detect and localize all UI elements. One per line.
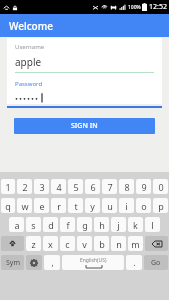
- staticText: ,: [51, 257, 54, 268]
- staticText: r: [57, 200, 61, 212]
- staticText: q: [5, 200, 11, 212]
- button[interactable]: p: [153, 198, 168, 213]
- button[interactable]: Settings: [26, 255, 42, 270]
- staticText: z: [31, 238, 36, 250]
- staticText: m: [131, 238, 140, 250]
- staticText: o: [141, 200, 147, 212]
- staticText: Password: [15, 80, 43, 88]
- button[interactable]: d: [43, 217, 58, 232]
- button[interactable]: y: [85, 198, 100, 213]
- staticText: u: [107, 200, 113, 212]
- staticText: 8: [124, 181, 130, 193]
- staticText: Go: [151, 258, 161, 268]
- staticText: l: [151, 219, 154, 231]
- button[interactable]: 3: [34, 179, 49, 194]
- button[interactable]: 6: [85, 179, 100, 194]
- staticText: 1: [5, 181, 11, 193]
- staticText: p: [158, 200, 164, 212]
- staticText: .: [133, 257, 136, 268]
- staticText: h: [99, 219, 105, 231]
- staticText: a: [14, 219, 20, 231]
- button[interactable]: s: [26, 217, 41, 232]
- button[interactable]: [15, 92, 154, 103]
- staticText: 3: [39, 181, 45, 193]
- staticText: Welcome: [9, 19, 53, 33]
- staticText: v: [82, 238, 87, 250]
- staticText: y: [90, 200, 95, 212]
- staticText: 0: [158, 181, 164, 193]
- staticText: b: [99, 238, 105, 250]
- staticText: x: [48, 238, 53, 250]
- button[interactable]: ,: [44, 255, 60, 270]
- button[interactable]: r: [51, 198, 66, 213]
- staticText: k: [133, 219, 138, 231]
- staticText: 5: [73, 181, 79, 193]
- button[interactable]: Go: [144, 255, 168, 270]
- staticText: apple: [15, 55, 42, 69]
- button[interactable]: Sym: [1, 255, 24, 270]
- staticText: 9: [141, 181, 147, 193]
- button[interactable]: 5: [68, 179, 83, 194]
- staticText: e: [39, 200, 45, 212]
- staticText: English(US): [80, 257, 107, 264]
- button[interactable]: g: [77, 217, 92, 232]
- staticText: j: [117, 219, 120, 231]
- button[interactable]: n: [111, 236, 126, 251]
- staticText: Sym: [6, 258, 20, 268]
- button[interactable]: f: [60, 217, 75, 232]
- button[interactable]: k: [128, 217, 143, 232]
- button[interactable]: 2: [17, 179, 32, 194]
- staticText: 6: [90, 181, 96, 193]
- button[interactable]: h: [94, 217, 109, 232]
- button[interactable]: 4: [51, 179, 66, 194]
- staticText: 2: [22, 181, 28, 193]
- staticText: n: [116, 238, 122, 250]
- staticText: 12:52: [149, 2, 167, 12]
- button[interactable]: i: [119, 198, 134, 213]
- button[interactable]: w: [17, 198, 32, 213]
- button[interactable]: 1: [1, 179, 15, 194]
- button[interactable]: u: [102, 198, 117, 213]
- button[interactable]: b: [94, 236, 109, 251]
- button[interactable]: c: [60, 236, 75, 251]
- button[interactable]: m: [128, 236, 143, 251]
- button[interactable]: Space: [62, 255, 124, 270]
- button[interactable]: SIGN IN: [14, 118, 155, 134]
- staticText: c: [65, 238, 70, 250]
- staticText: g: [82, 219, 88, 231]
- button[interactable]: .: [126, 255, 142, 270]
- staticText: i: [125, 200, 128, 212]
- button[interactable]: 7: [102, 179, 117, 194]
- staticText: t: [74, 200, 78, 212]
- button[interactable]: Shift: [1, 236, 24, 251]
- staticText: 100%: [128, 4, 141, 11]
- button[interactable]: Backspace: [145, 236, 168, 251]
- button[interactable]: e: [34, 198, 49, 213]
- button[interactable]: z: [26, 236, 41, 251]
- button[interactable]: 8: [119, 179, 134, 194]
- staticText: w: [21, 200, 29, 212]
- button[interactable]: x: [43, 236, 58, 251]
- button[interactable]: 0: [153, 179, 168, 194]
- staticText: SIGN IN: [71, 121, 98, 131]
- button[interactable]: o: [136, 198, 151, 213]
- staticText: s: [31, 219, 36, 231]
- button[interactable]: l: [145, 217, 160, 232]
- button[interactable]: 9: [136, 179, 151, 194]
- staticText: d: [48, 219, 54, 231]
- staticText: 7: [107, 181, 113, 193]
- button[interactable]: a: [9, 217, 24, 232]
- staticText: Username: [15, 43, 45, 51]
- staticText: f: [66, 219, 70, 231]
- button[interactable]: t: [68, 198, 83, 213]
- button[interactable]: j: [111, 217, 126, 232]
- button[interactable]: q: [1, 198, 15, 213]
- staticText: 4: [56, 181, 62, 193]
- button[interactable]: v: [77, 236, 92, 251]
- button[interactable]: apple: [15, 55, 154, 69]
